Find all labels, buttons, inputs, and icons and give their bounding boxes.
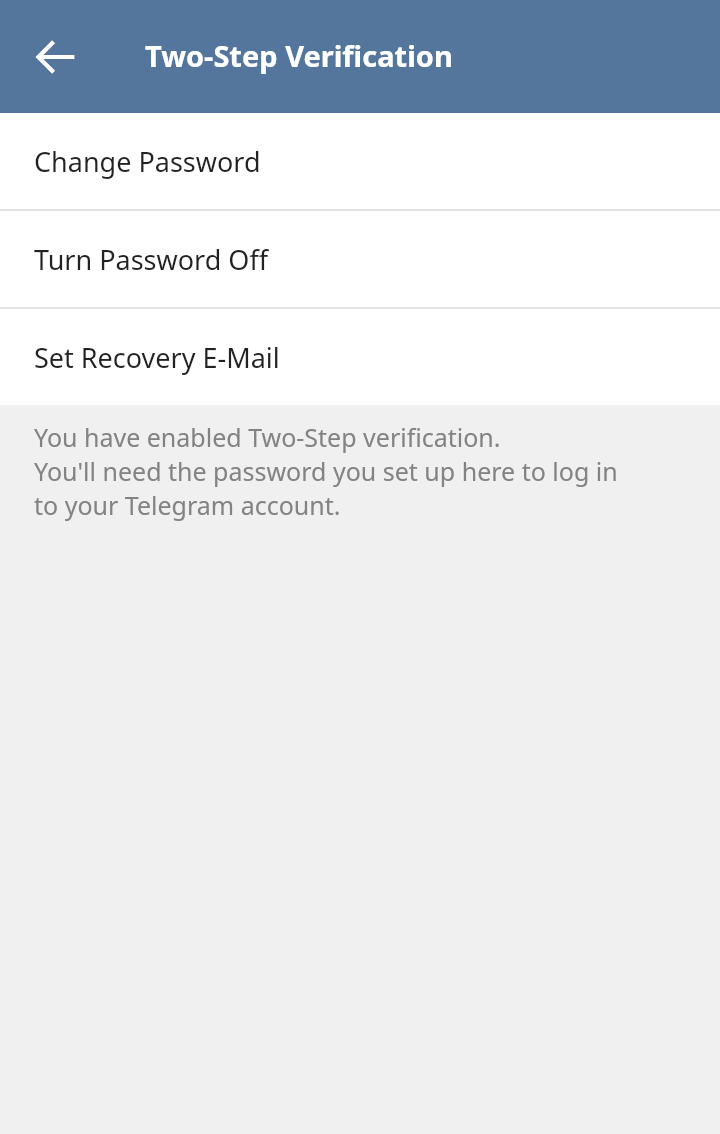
button[interactable]: Change Password (0, 113, 720, 209)
staticText: You have enabled Two-Step verification. … (34, 420, 618, 522)
button[interactable]: Back (14, 15, 98, 99)
staticText: Change Password (34, 143, 261, 180)
button[interactable]: Set Recovery E-Mail (0, 309, 720, 405)
staticText: Set Recovery E-Mail (34, 339, 280, 376)
staticText: Two-Step Verification (145, 36, 453, 75)
button[interactable]: Turn Password Off (0, 211, 720, 307)
staticText: Turn Password Off (34, 241, 269, 278)
